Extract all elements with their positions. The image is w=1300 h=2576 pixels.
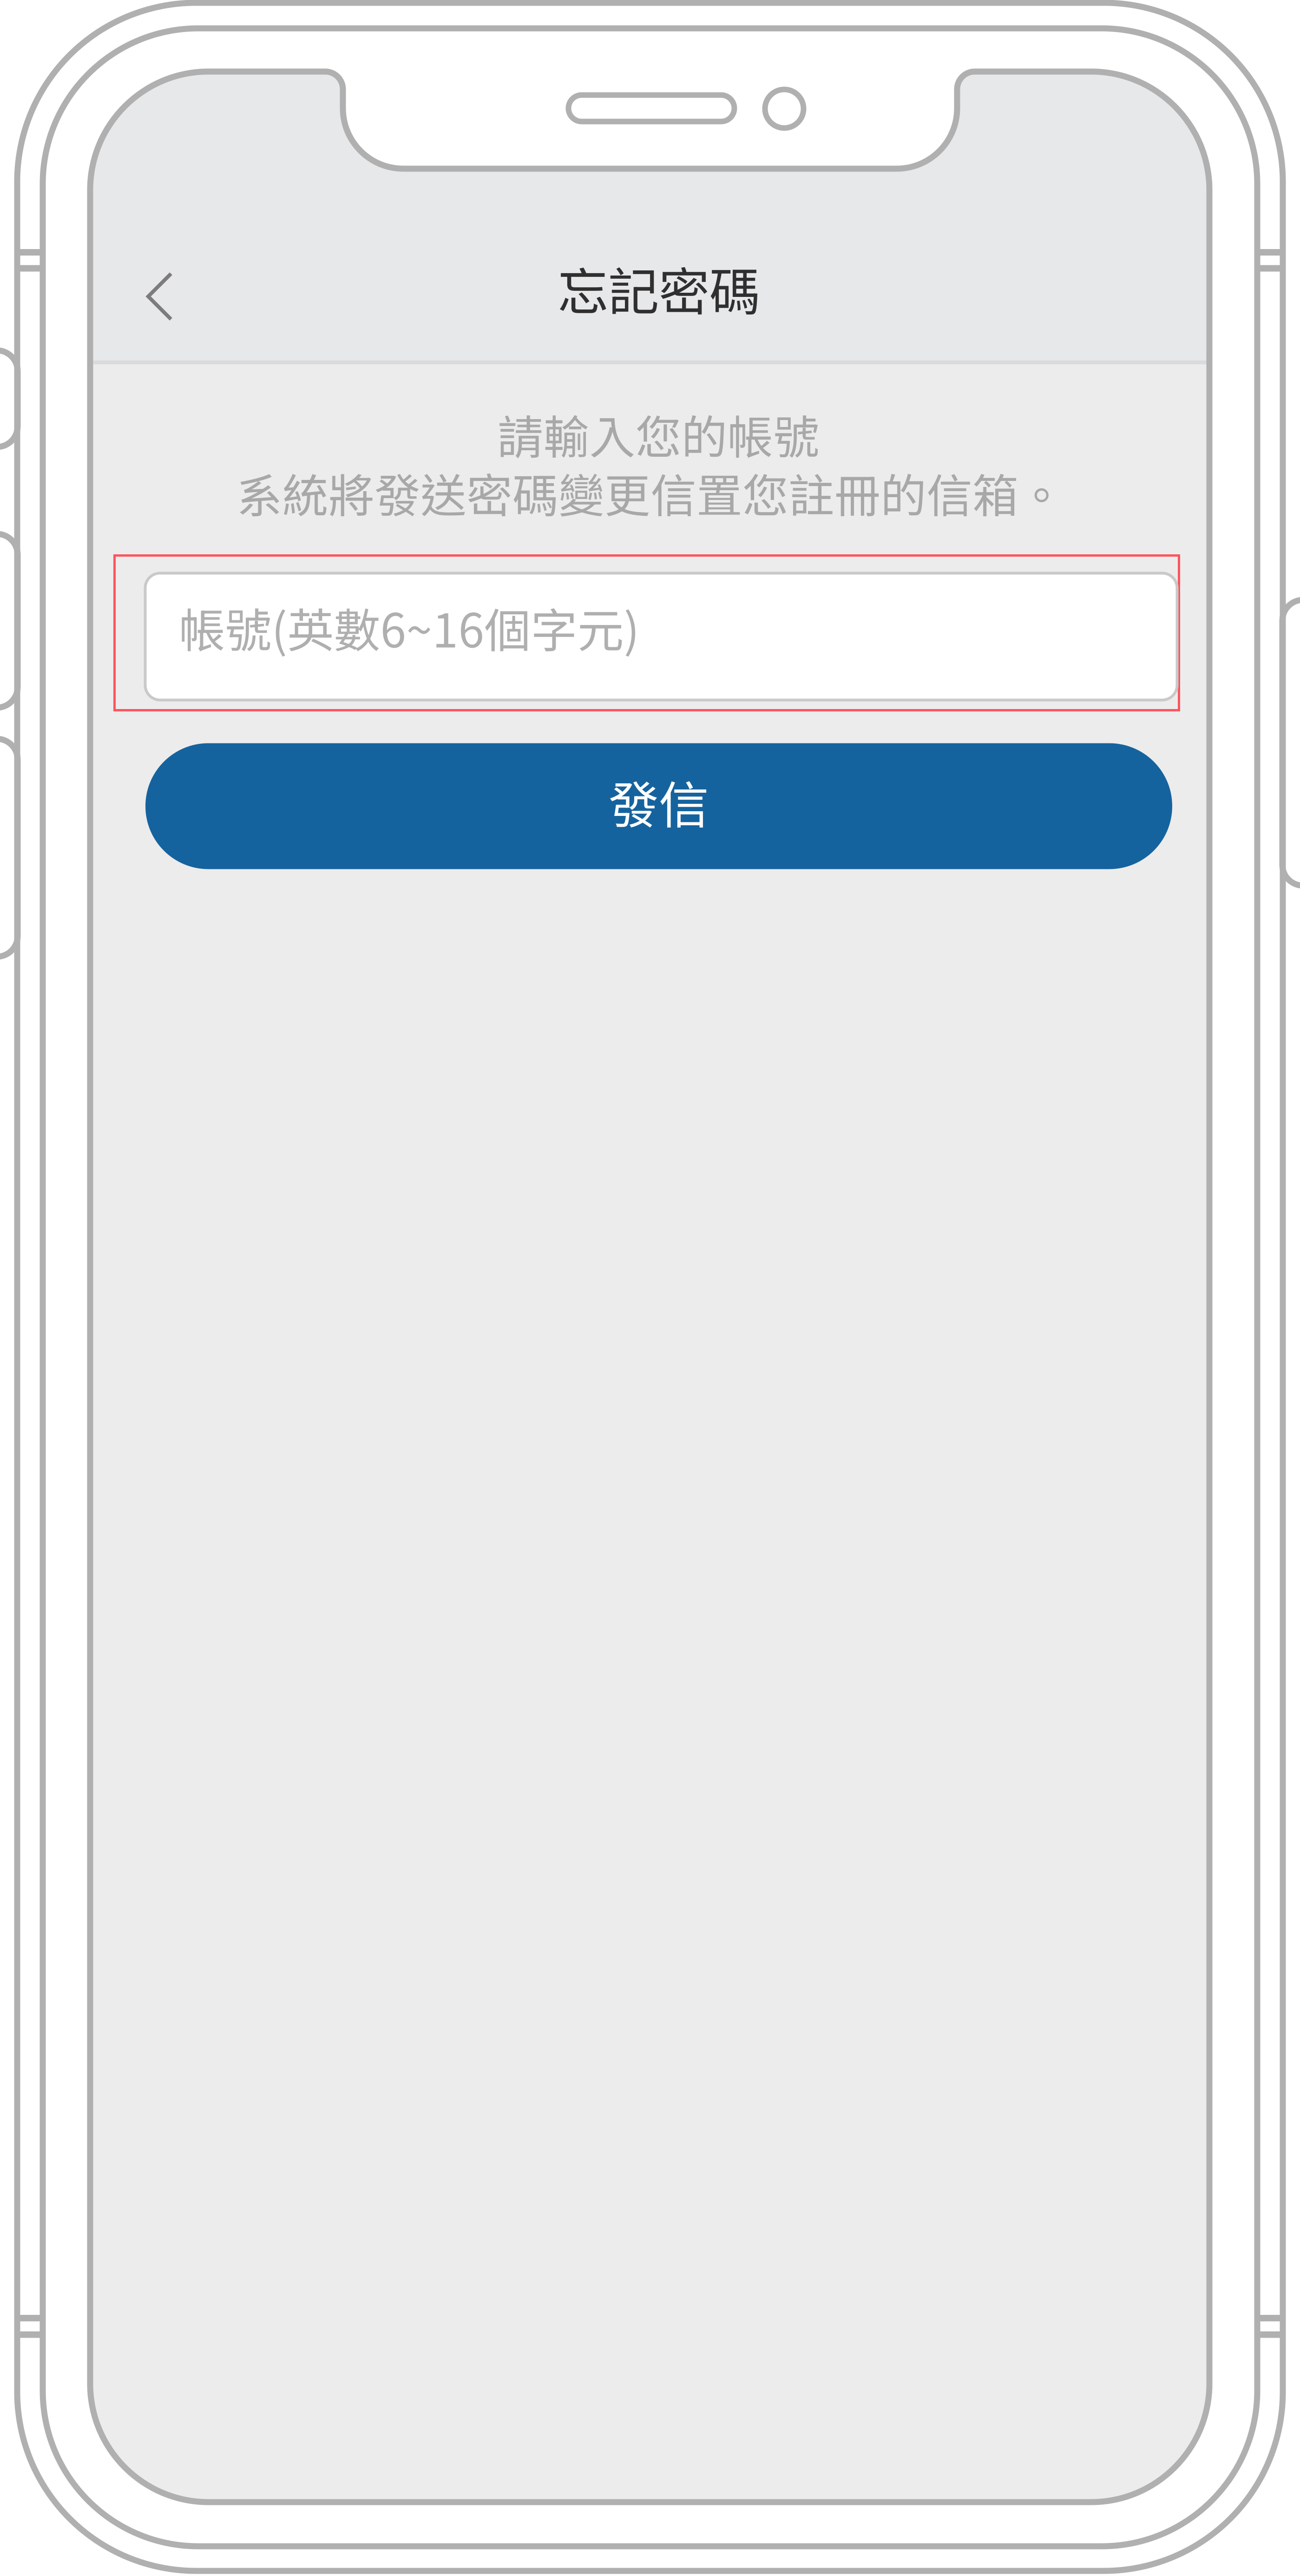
staticText: 系統將發送密碼變更信置您註冊的信箱。 [236, 459, 1064, 526]
button[interactable]: 返回 [116, 255, 199, 338]
staticText: 忘記密碼 [558, 251, 760, 325]
button[interactable]: 發信 [145, 743, 1172, 869]
staticText: 發信 [609, 765, 709, 838]
staticText: 帳號(英數6~16個字元) [179, 594, 640, 661]
button[interactable]: 帳號(英數6~16個字元) [145, 573, 1177, 700]
staticText: 請輸入您的帳號 [497, 401, 819, 467]
